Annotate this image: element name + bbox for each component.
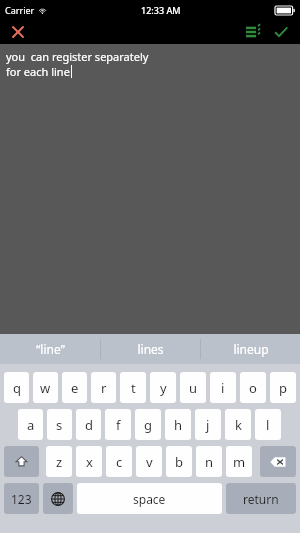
button[interactable]: 123 — [4, 483, 39, 514]
staticText: space — [133, 491, 166, 507]
button[interactable]: u — [180, 372, 206, 403]
staticText: j — [206, 416, 210, 434]
staticText: g — [144, 416, 152, 434]
staticText: b — [175, 453, 183, 471]
button[interactable]: m — [226, 446, 252, 477]
staticText: q — [13, 379, 21, 397]
button[interactable]: y — [150, 372, 176, 403]
staticText: 12:33 AM — [141, 4, 181, 16]
button[interactable]: e — [62, 372, 87, 403]
button[interactable]: d — [76, 409, 101, 440]
staticText: p — [279, 379, 287, 397]
button[interactable]: Backspace — [260, 446, 296, 477]
button[interactable]: x — [76, 446, 102, 477]
staticText: y — [160, 379, 167, 397]
staticText: m — [233, 453, 246, 471]
button[interactable]: r — [91, 372, 116, 403]
staticText: d — [85, 416, 93, 434]
button[interactable]: c — [106, 446, 132, 477]
button[interactable]: v — [136, 446, 162, 477]
button[interactable]: o — [240, 372, 266, 403]
button[interactable]: w — [33, 372, 58, 403]
staticText: v — [146, 453, 153, 471]
button[interactable]: j — [195, 409, 221, 440]
button[interactable]: g — [135, 409, 161, 440]
staticText: you can register separately — [6, 49, 149, 64]
button[interactable]: l — [255, 409, 281, 440]
staticText: k — [235, 416, 242, 434]
staticText: x — [86, 453, 93, 471]
button[interactable]: Done — [270, 21, 292, 43]
button[interactable]: return — [226, 483, 296, 514]
staticText: s — [56, 416, 63, 434]
staticText: c — [116, 453, 123, 471]
button[interactable]: f — [105, 409, 131, 440]
staticText: lines — [137, 341, 164, 357]
button[interactable]: Cancel — [8, 22, 28, 42]
staticText: l — [266, 416, 270, 434]
staticText: lineup — [233, 341, 269, 357]
button[interactable]: i — [210, 372, 236, 403]
button[interactable]: z — [46, 446, 72, 477]
staticText: o — [249, 379, 257, 397]
staticText: z — [56, 453, 63, 471]
button[interactable]: Shift — [4, 446, 39, 477]
button[interactable]: t — [120, 372, 146, 403]
staticText: for each line — [6, 64, 70, 79]
button[interactable]: lines — [101, 334, 200, 364]
button[interactable]: List options — [242, 21, 264, 43]
button[interactable]: s — [47, 409, 72, 440]
button[interactable]: k — [225, 409, 251, 440]
button[interactable]: “line” — [0, 334, 100, 364]
button[interactable]: lineup — [201, 334, 300, 364]
staticText: a — [27, 416, 35, 434]
staticText: f — [116, 416, 121, 434]
staticText: t — [131, 379, 136, 397]
staticText: n — [205, 453, 214, 471]
button[interactable]: q — [4, 372, 29, 403]
button[interactable]: n — [196, 446, 222, 477]
staticText: Carrier — [5, 4, 35, 16]
button[interactable]: Change keyboard — [43, 483, 73, 514]
staticText: u — [189, 379, 198, 397]
staticText: h — [174, 416, 183, 434]
button[interactable]: p — [270, 372, 296, 403]
staticText: w — [40, 379, 51, 397]
staticText: r — [101, 379, 107, 397]
button[interactable]: b — [166, 446, 192, 477]
staticText: 123 — [11, 491, 32, 507]
staticText: e — [71, 379, 79, 397]
button[interactable]: h — [165, 409, 191, 440]
staticText: i — [221, 379, 225, 397]
button[interactable]: space — [77, 483, 222, 514]
staticText: return — [243, 491, 279, 507]
staticText: “line” — [36, 341, 65, 357]
button[interactable]: a — [18, 409, 43, 440]
